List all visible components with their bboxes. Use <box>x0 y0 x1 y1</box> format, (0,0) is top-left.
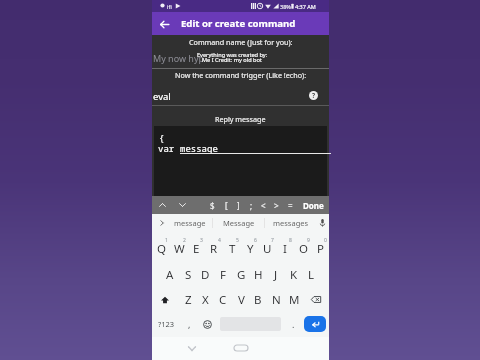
staticText: 3 <box>200 237 203 244</box>
button[interactable]: Y <box>241 236 259 261</box>
button[interactable]: Backspace <box>303 287 329 312</box>
staticText: 4:37 AM <box>295 3 316 10</box>
staticText: messages <box>273 218 309 228</box>
button[interactable]: Home <box>232 343 250 353</box>
staticText: ifi <box>167 3 172 10</box>
button[interactable]: A <box>161 262 179 287</box>
staticText: > <box>274 200 279 211</box>
button[interactable]: [ <box>220 196 232 214</box>
button[interactable]: Message <box>213 214 264 232</box>
button[interactable]: N <box>267 287 285 312</box>
staticText: { <box>159 132 165 144</box>
button[interactable]: S <box>179 262 197 287</box>
button[interactable]: Z <box>179 287 197 312</box>
staticText: Q <box>157 241 166 257</box>
staticText: ] <box>237 200 240 211</box>
staticText: W <box>174 241 185 257</box>
staticText: message <box>174 218 206 228</box>
staticText: U <box>263 241 272 257</box>
button[interactable]: Back <box>155 15 173 33</box>
button[interactable]: C <box>214 287 232 312</box>
button[interactable]: Enter <box>304 316 326 332</box>
staticText: Everything was created by: <box>197 51 268 59</box>
staticText: C <box>219 292 227 308</box>
staticText: 6 <box>254 237 257 244</box>
button[interactable]: E <box>187 236 205 261</box>
button[interactable]: messages <box>265 214 316 232</box>
staticText: ? <box>312 91 316 100</box>
staticText: L <box>308 267 315 283</box>
button[interactable]: U <box>258 236 276 261</box>
button[interactable]: T <box>223 236 241 261</box>
staticText: Me I Credit: my old bot <box>202 56 262 64</box>
staticText: Command name (Just for you): <box>189 37 293 47</box>
staticText: , <box>188 318 191 330</box>
staticText: = <box>288 200 293 211</box>
staticText: 4 <box>218 237 221 244</box>
staticText: Now the command trigger (Like !echo): <box>175 70 307 80</box>
staticText: J <box>274 267 278 283</box>
staticText: ; <box>250 200 253 211</box>
button[interactable]: ?123 <box>152 312 180 336</box>
button[interactable]: M <box>285 287 303 312</box>
button[interactable]: O <box>294 236 312 261</box>
staticText: Done <box>303 200 324 211</box>
staticText: 5 <box>236 237 239 244</box>
staticText: F <box>220 267 226 283</box>
button[interactable]: B <box>249 287 267 312</box>
button[interactable]: . <box>285 312 301 336</box>
button[interactable]: < <box>257 196 269 214</box>
staticText: My now hyp <box>153 52 205 64</box>
button[interactable]: Back <box>182 342 202 354</box>
staticText: T <box>229 241 236 257</box>
button[interactable]: L <box>302 262 320 287</box>
button[interactable]: = <box>284 196 296 214</box>
button[interactable]: Emoji <box>198 312 216 336</box>
button[interactable]: I <box>276 236 294 261</box>
staticText: G <box>237 267 246 283</box>
button[interactable]: H <box>249 262 267 287</box>
staticText: X <box>202 292 209 308</box>
button[interactable]: Help <box>309 91 318 100</box>
button[interactable]: W <box>170 236 188 261</box>
staticText: Message <box>223 218 255 228</box>
button[interactable]: Voice input <box>316 214 329 232</box>
button[interactable]: More suggestions <box>156 214 168 232</box>
button[interactable]: J <box>267 262 285 287</box>
staticText: 7 <box>271 237 274 244</box>
button[interactable]: Done <box>300 196 326 214</box>
button[interactable]: Previous <box>154 196 171 214</box>
staticText: 2 <box>183 237 186 244</box>
button[interactable]: ; <box>245 196 257 214</box>
staticText: 8 <box>289 237 292 244</box>
staticText: A <box>166 267 174 283</box>
staticText: $ <box>210 200 215 211</box>
staticText: 9 <box>307 237 310 244</box>
button[interactable]: X <box>196 287 214 312</box>
button[interactable]: , <box>180 312 198 336</box>
staticText: V <box>238 292 245 308</box>
button[interactable]: message <box>168 214 212 232</box>
staticText: I <box>283 241 287 257</box>
button[interactable]: V <box>232 287 250 312</box>
staticText: K <box>290 267 298 283</box>
button[interactable]: Shift <box>152 287 178 312</box>
button[interactable]: F <box>214 262 232 287</box>
button[interactable]: P <box>311 236 329 261</box>
button[interactable]: R <box>205 236 223 261</box>
button[interactable]: Q <box>152 236 170 261</box>
button[interactable]: G <box>232 262 250 287</box>
button[interactable]: D <box>196 262 214 287</box>
button[interactable]: > <box>270 196 282 214</box>
button[interactable]: ] <box>232 196 244 214</box>
button[interactable]: K <box>285 262 303 287</box>
staticText: Edit or create command <box>181 17 296 30</box>
staticText: eval <box>153 90 171 103</box>
staticText: H <box>254 267 263 283</box>
staticText: 38% <box>280 3 291 10</box>
staticText: message <box>180 142 218 154</box>
staticText: 0 <box>324 237 327 244</box>
button[interactable]: $ <box>206 196 218 214</box>
button[interactable]: Next <box>174 196 191 214</box>
